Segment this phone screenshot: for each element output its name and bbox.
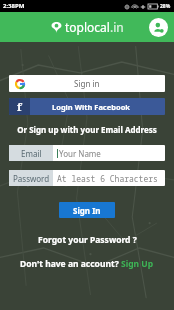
staticText: .in [110, 19, 124, 35]
button[interactable]: Profile [149, 18, 168, 37]
staticText: Password [13, 173, 50, 184]
staticText: Don't have an account? [20, 258, 121, 270]
staticText: toplocal [65, 19, 110, 35]
button[interactable]: Sign In [59, 202, 115, 218]
button[interactable]: Sign in [9, 75, 165, 92]
staticText: Or Sign up with your Email Address [17, 124, 157, 135]
button[interactable]: Password [9, 170, 165, 186]
button[interactable]: Forgot your Password ? [36, 232, 139, 248]
staticText: At least 6 Characters [57, 173, 158, 184]
staticText: f [17, 99, 22, 114]
staticText: Your Name [59, 148, 101, 159]
staticText: Sign In [73, 205, 101, 216]
staticText: 2:38PM [3, 2, 25, 10]
button[interactable]: Email [9, 145, 165, 161]
staticText: 28% [160, 3, 171, 10]
staticText: Login With Facebook [52, 102, 130, 112]
staticText: Sign in [74, 78, 100, 89]
button[interactable]: f [9, 98, 165, 115]
staticText: Email [21, 148, 42, 159]
button[interactable]: Sign Up [121, 258, 154, 270]
